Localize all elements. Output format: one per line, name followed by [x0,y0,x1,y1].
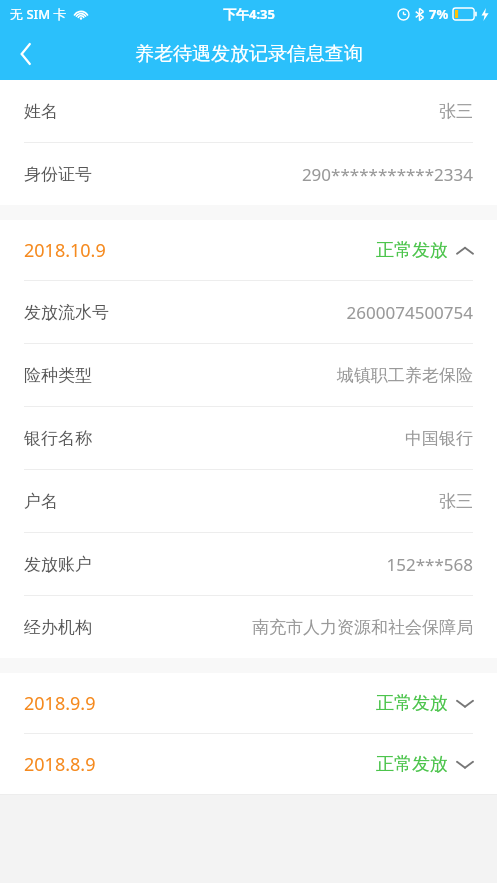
button[interactable]: 2018.8.9 [0,734,497,794]
staticText: 2018.10.9 [24,238,106,263]
staticText: 银行名称 [24,428,92,449]
button[interactable]: Back [0,28,52,80]
button[interactable]: 2018.10.9 [0,220,497,280]
staticText: 姓名 [24,101,58,122]
staticText: 养老待遇发放记录信息查询 [135,42,363,66]
staticText: 险种类型 [24,365,92,386]
button[interactable]: 身份证号 [0,143,497,205]
staticText: 2600074500754 [346,301,473,324]
button[interactable]: 发放账户 [0,533,497,595]
staticText: 南充市人力资源和社会保障局 [252,617,473,638]
staticText: 290***********2334 [301,163,473,186]
button[interactable]: 银行名称 [0,407,497,469]
staticText: 正常发放 [376,692,448,715]
button[interactable]: 发放流水号 [0,281,497,343]
staticText: 张三 [439,101,473,122]
staticText: 张三 [439,491,473,512]
staticText: 城镇职工养老保险 [337,365,473,386]
staticText: 正常发放 [376,753,448,776]
staticText: 户名 [24,491,58,512]
button[interactable]: 险种类型 [0,344,497,406]
staticText: 下午4:35 [223,5,275,23]
staticText: 正常发放 [376,239,448,262]
staticText: 中国银行 [405,428,473,449]
button[interactable]: 经办机构 [0,596,497,658]
button[interactable]: 姓名 [0,80,497,142]
staticText: 2018.9.9 [24,691,96,716]
staticText: 152***568 [386,553,473,576]
staticText: 身份证号 [24,164,92,185]
staticText: 发放账户 [24,554,92,575]
staticText: 经办机构 [24,617,92,638]
staticText: 发放流水号 [24,302,109,323]
button[interactable]: 2018.9.9 [0,673,497,733]
staticText: 7% [429,5,449,23]
staticText: 无 SIM 卡 [10,5,67,23]
staticText: 2018.8.9 [24,752,96,777]
button[interactable]: 户名 [0,470,497,532]
